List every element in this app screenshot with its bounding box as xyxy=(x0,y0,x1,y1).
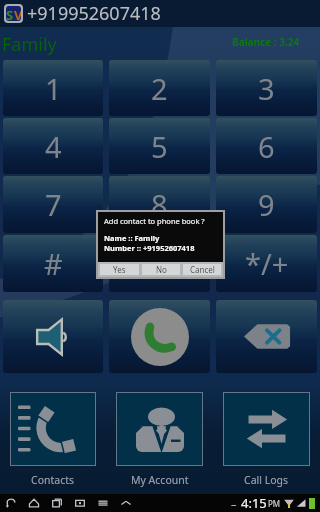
button[interactable]: 8 xyxy=(106,175,213,234)
staticText: 6 xyxy=(258,127,275,166)
staticText: Call Logs xyxy=(244,473,289,487)
button[interactable]: */+ xyxy=(213,234,320,293)
button[interactable]: 0 xyxy=(106,234,213,293)
staticText: Yes xyxy=(113,264,126,275)
staticText: +919952607418 xyxy=(27,1,161,26)
staticText: 8 xyxy=(151,185,168,224)
staticText: PM xyxy=(268,498,281,509)
button[interactable]: Call xyxy=(106,299,213,374)
staticText: V xyxy=(14,6,21,21)
button[interactable]: 3 xyxy=(213,59,320,117)
staticText: 0 xyxy=(151,244,168,283)
button[interactable]: Home xyxy=(27,496,41,510)
button[interactable]: 7 xyxy=(0,175,106,234)
staticText: 1 xyxy=(45,69,62,108)
button[interactable]: Menu xyxy=(96,496,110,510)
staticText: Cancel xyxy=(190,264,215,275)
staticText: 4:15 xyxy=(241,494,267,512)
button[interactable]: 6 xyxy=(213,117,320,175)
staticText: No xyxy=(156,264,167,275)
staticText: 7 xyxy=(45,185,62,224)
button[interactable]: Back xyxy=(4,496,18,510)
staticText: Add contact to phone book ? xyxy=(104,216,205,226)
button[interactable]: No xyxy=(142,264,180,275)
button[interactable]: 9 xyxy=(213,175,320,234)
staticText: Contacts xyxy=(31,473,75,487)
staticText: 9 xyxy=(258,185,275,224)
staticText: Family xyxy=(2,32,57,57)
button[interactable]: 2 xyxy=(106,59,213,117)
staticText: – xyxy=(231,496,237,511)
staticText: Balance : 3.24 xyxy=(232,35,300,49)
staticText: 4 xyxy=(45,127,62,166)
button[interactable]: Cancel xyxy=(183,264,221,275)
button[interactable]: Expand xyxy=(119,496,133,510)
staticText: # xyxy=(44,244,63,283)
button[interactable]: Yes xyxy=(100,264,139,275)
button[interactable]: Backspace xyxy=(213,299,320,374)
button[interactable]: My Account xyxy=(106,392,213,494)
button[interactable]: Contacts xyxy=(0,392,106,494)
button[interactable]: Recents xyxy=(50,496,64,510)
button[interactable]: Call Logs xyxy=(213,392,320,494)
staticText: 2 xyxy=(151,69,168,108)
staticText: 5 xyxy=(151,127,168,166)
staticText: */+ xyxy=(245,244,289,283)
button[interactable]: 1 xyxy=(0,59,106,117)
staticText: Name :: Family xyxy=(104,233,160,243)
staticText: S xyxy=(6,6,14,21)
button[interactable]: 4 xyxy=(0,117,106,175)
button[interactable]: Screenshot xyxy=(73,496,87,510)
staticText: My Account xyxy=(131,473,189,487)
button[interactable]: Speaker xyxy=(0,299,106,374)
staticText: 3 xyxy=(258,69,275,108)
staticText: Number :: +91952607418 xyxy=(104,243,195,253)
button[interactable]: 5 xyxy=(106,117,213,175)
button[interactable]: # xyxy=(0,234,106,293)
